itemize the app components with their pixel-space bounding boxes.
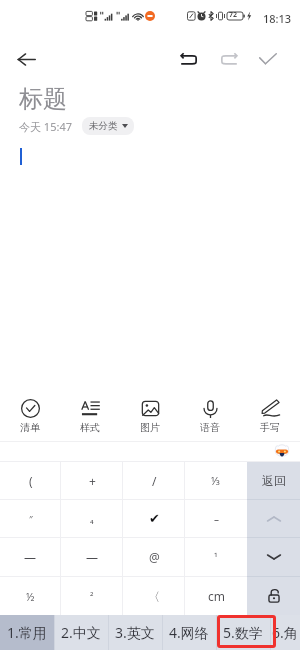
staticText: ″ [29,513,33,525]
button[interactable]: 图片 [120,391,180,441]
staticText: + [89,473,96,489]
button[interactable]: 未分类 [82,117,134,135]
staticText: 语音 [200,421,220,434]
button[interactable]: 〈 [123,577,185,615]
button[interactable]: ₄ [61,500,123,537]
staticText: 2.中文 [61,623,101,642]
staticText: @ [149,549,160,565]
button[interactable]: 4.网络 [162,615,216,650]
staticText: / [152,473,157,489]
staticText: ₄ [90,512,94,526]
button[interactable]: 清单 [0,391,60,441]
staticText: 标题 [19,84,67,114]
button[interactable]: Undo [172,42,208,76]
staticText: 未分类 [89,120,118,132]
staticText: 返回 [262,473,286,488]
staticText: ½ [26,589,35,604]
staticText: 手写 [260,421,280,434]
button[interactable]: ² [61,577,123,615]
button[interactable]: + [61,462,123,499]
button[interactable]: ✔ [123,500,185,537]
button[interactable]: 返回 [247,462,300,499]
staticText: – [214,512,219,526]
button[interactable]: 3.英文 [108,615,162,650]
button[interactable]: 手写 [240,391,300,441]
button[interactable]: Back [9,42,43,76]
button[interactable]: ″ [0,500,61,537]
staticText: cm [208,588,225,604]
button[interactable]: – [185,500,247,537]
staticText: 4.网络 [169,623,209,642]
staticText: 今天 15:47 [19,119,72,134]
button[interactable]: @ [123,538,185,576]
button[interactable]: Redo [210,42,246,76]
button[interactable]: 2.中文 [54,615,108,650]
button[interactable]: ⅓ [185,462,247,499]
button[interactable]: 5.数学 [216,615,270,650]
button[interactable]: Lock [247,577,300,615]
staticText: 1.常用 [7,623,47,642]
staticText: 5.数学 [223,623,263,642]
staticText: ( [29,473,33,489]
button[interactable]: ½ [0,577,61,615]
staticText: — [24,549,37,565]
staticText: ⅓ [211,473,221,488]
button[interactable]: 样式 [60,391,120,441]
staticText: ¹ [214,550,218,564]
button[interactable]: Done [250,42,286,76]
staticText: 图片 [140,421,160,434]
staticText: 3.英文 [115,623,155,642]
button[interactable]: 语音 [180,391,240,441]
button[interactable]: Move down [247,538,300,576]
staticText: 6.角 [272,623,298,642]
button[interactable]: ( [0,462,61,499]
staticText: 72 [229,10,238,20]
button[interactable]: 6.角 [270,615,300,650]
staticText: — [86,549,99,565]
button[interactable]: cm [185,577,247,615]
button[interactable]: — [61,538,123,576]
staticText: ✔ [149,511,160,526]
button[interactable]: / [123,462,185,499]
staticText: 〈 [148,589,160,604]
button[interactable]: ¹ [185,538,247,576]
button[interactable]: Input method assistant [274,443,290,459]
staticText: ² [90,589,94,603]
button[interactable]: — [0,538,61,576]
staticText: 样式 [80,421,100,434]
button[interactable]: 1.常用 [0,615,54,650]
button[interactable]: Move up [247,500,300,537]
staticText: 清单 [20,421,40,434]
staticText: 18:13 [263,11,292,26]
